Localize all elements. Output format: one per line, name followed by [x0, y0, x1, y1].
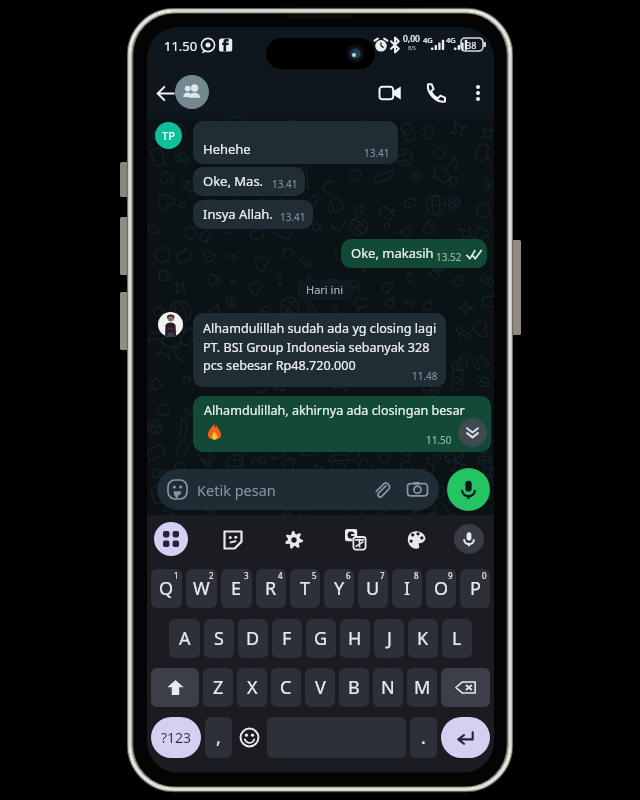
button[interactable]: H	[340, 619, 370, 658]
button[interactable]: Group profile	[175, 75, 209, 109]
staticText: 4	[278, 570, 283, 581]
button[interactable]: Voice typing	[454, 524, 484, 554]
staticText: 13.41	[272, 177, 298, 191]
button[interactable]: Insya Allah.	[193, 200, 313, 229]
button[interactable]: F	[272, 619, 302, 658]
staticText: W	[193, 576, 210, 601]
button[interactable]: .	[410, 717, 437, 758]
button[interactable]: Backspace	[441, 668, 490, 707]
button[interactable]: Stickers	[219, 526, 246, 553]
button[interactable]: Z	[203, 668, 233, 707]
staticText: Hari ini	[306, 282, 344, 297]
staticText: ,	[216, 725, 221, 750]
staticText: Alhamdulillah, akhirnya ada closingan be…	[204, 402, 465, 419]
staticText: K	[417, 626, 429, 651]
button[interactable]: T	[290, 569, 320, 608]
button[interactable]: Alhamdulillah, akhirnya ada closingan be…	[193, 396, 491, 452]
staticText: V	[315, 675, 326, 700]
staticText: 4G	[423, 35, 433, 45]
button[interactable]: ?123	[151, 717, 201, 758]
staticText: S	[214, 626, 224, 651]
staticText: Alhamdulillah sudah ada yg closing lagi …	[203, 320, 445, 373]
button[interactable]: More options	[462, 77, 494, 109]
button[interactable]: G	[306, 619, 336, 658]
staticText: Q	[159, 576, 174, 601]
button[interactable]: A	[169, 619, 200, 658]
button[interactable]: Record voice message	[447, 468, 490, 511]
button[interactable]: I	[392, 569, 422, 608]
button[interactable]: Q	[151, 569, 182, 608]
button[interactable]: Themes	[403, 526, 430, 553]
staticText: 5	[312, 570, 317, 581]
staticText: N	[381, 675, 395, 700]
staticText: 7	[380, 570, 385, 581]
staticText: 11.48	[412, 369, 438, 383]
staticText: 11.50	[164, 37, 198, 55]
button[interactable]: Enter	[441, 717, 490, 758]
staticText: E	[231, 576, 242, 601]
staticText: 3	[244, 570, 249, 581]
staticText: Oke, makasih	[351, 244, 434, 262]
button[interactable]: B	[339, 668, 369, 707]
button[interactable]: U	[358, 569, 388, 608]
button[interactable]: Voice call	[419, 76, 453, 110]
button[interactable]: Oke, Mas.	[193, 167, 305, 196]
button[interactable]: Open apps	[154, 522, 188, 556]
staticText: D	[246, 626, 260, 651]
staticText: 2	[209, 570, 214, 581]
button[interactable]: Alhamdulillah sudah ada yg closing lagi …	[193, 313, 446, 387]
staticText: 6	[346, 570, 351, 581]
staticText: Y	[334, 576, 345, 601]
button[interactable]: Ketik pesan	[157, 469, 439, 510]
button[interactable]: Back	[149, 77, 181, 109]
button[interactable]: V	[305, 668, 335, 707]
staticText: 13.41	[364, 146, 390, 160]
button[interactable]: Shift	[151, 668, 199, 707]
staticText: A	[179, 626, 191, 651]
staticText: 0	[482, 570, 487, 581]
button[interactable]: C	[271, 668, 301, 707]
button[interactable]: M	[407, 668, 437, 707]
button[interactable]: X	[237, 668, 267, 707]
staticText: 8	[414, 570, 419, 581]
button[interactable]: Emoji	[236, 717, 263, 758]
button[interactable]: Hehehe	[193, 121, 398, 164]
button[interactable]: D	[238, 619, 268, 658]
staticText: 38	[466, 39, 477, 51]
staticText: 13.41	[280, 210, 306, 224]
button[interactable]: O	[426, 569, 456, 608]
staticText: R	[265, 576, 277, 601]
staticText: T	[300, 576, 311, 601]
button[interactable]: J	[374, 619, 404, 658]
staticText: 11.50	[426, 433, 452, 447]
button[interactable]: N	[373, 668, 403, 707]
button[interactable]: Oke, makasih	[341, 239, 487, 268]
staticText: Oke, Mas.	[203, 172, 264, 190]
staticText: G	[314, 626, 328, 651]
button[interactable]: L	[442, 619, 472, 658]
staticText: 9	[448, 570, 453, 581]
button[interactable]: ,	[205, 717, 232, 758]
button[interactable]: Keyboard settings	[280, 526, 307, 553]
button[interactable]: Video call	[373, 76, 407, 110]
button[interactable]: K	[408, 619, 438, 658]
button[interactable]: Y	[324, 569, 354, 608]
staticText: P	[470, 576, 481, 601]
staticText: C	[280, 675, 292, 700]
button[interactable]: S	[204, 619, 234, 658]
button[interactable]: W	[186, 569, 217, 608]
staticText: L	[452, 626, 462, 651]
button[interactable]: E	[221, 569, 252, 608]
staticText: F	[282, 626, 292, 651]
staticText: X	[247, 675, 258, 700]
button[interactable]: P	[460, 569, 490, 608]
staticText: ?123	[161, 728, 192, 747]
other: Attach	[372, 480, 391, 499]
button[interactable]: Scroll to bottom	[458, 418, 487, 447]
staticText: H	[348, 626, 362, 651]
staticText: 0,00	[403, 33, 420, 45]
button[interactable]: R	[256, 569, 286, 608]
button[interactable]: Translate	[342, 526, 369, 553]
staticText: M	[414, 675, 431, 700]
